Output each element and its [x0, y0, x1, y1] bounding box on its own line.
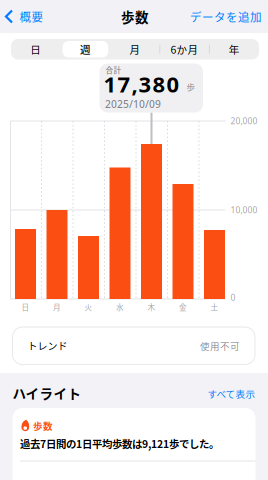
staticText: 20,000	[230, 115, 257, 127]
staticText: すべて表示	[207, 387, 255, 400]
button[interactable]: 歩数	[12, 408, 255, 480]
staticText: 合計	[105, 65, 121, 75]
button[interactable]: 6か月	[160, 39, 209, 59]
staticText: 歩数	[121, 7, 149, 26]
staticText: 木	[147, 301, 155, 312]
staticText: ハイライト	[12, 383, 81, 403]
staticText: データを追加	[190, 8, 262, 25]
staticText: 水	[116, 301, 124, 312]
staticText: 日	[21, 301, 29, 312]
staticText: 過去7日間の1日平均歩数は9,121歩でした。	[20, 436, 219, 451]
button[interactable]: データを追加	[152, 0, 262, 33]
staticText: 0	[230, 292, 235, 303]
button[interactable]: トレンド	[12, 327, 255, 364]
staticText: 2025/10/09	[105, 97, 161, 111]
staticText: 日	[30, 42, 41, 57]
staticText: 概要	[19, 8, 43, 25]
staticText: 歩	[186, 80, 195, 93]
button[interactable]: 週	[61, 39, 110, 59]
staticText: 月	[53, 301, 61, 312]
staticText: 歩数	[33, 419, 53, 432]
staticText: 週	[80, 42, 91, 57]
staticText: 10,000	[230, 204, 257, 216]
button[interactable]: 日	[11, 39, 61, 59]
staticText: 6か月	[171, 42, 199, 57]
button[interactable]: 月	[110, 39, 160, 59]
button[interactable]: 年	[209, 39, 259, 59]
button[interactable]: 概要	[5, 0, 65, 33]
staticText: 土	[210, 301, 218, 312]
staticText: 年	[229, 42, 240, 57]
staticText: トレンド	[27, 338, 67, 353]
button[interactable]: すべて表示	[165, 384, 255, 402]
staticText: 火	[84, 301, 92, 312]
staticText: 17,380	[103, 69, 179, 99]
staticText: 使用不可	[200, 339, 240, 353]
staticText: 金	[179, 301, 187, 312]
staticText: 月	[129, 42, 140, 57]
